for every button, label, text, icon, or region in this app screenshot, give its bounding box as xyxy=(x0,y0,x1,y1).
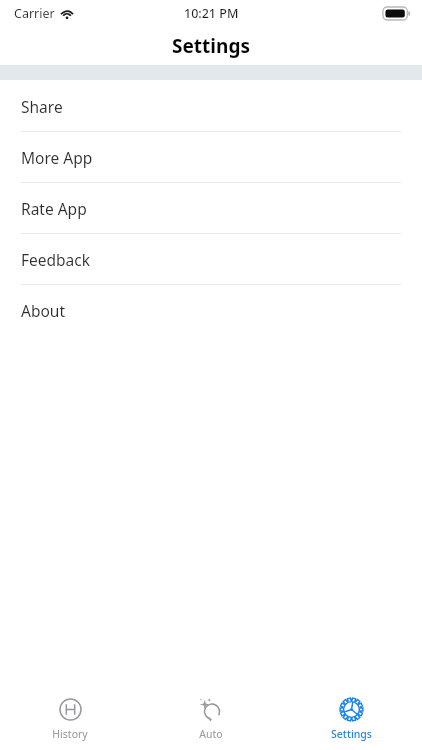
staticText: History xyxy=(52,727,88,741)
button[interactable]: Feedback xyxy=(0,234,422,285)
staticText: More App xyxy=(21,147,93,168)
staticText: Rate App xyxy=(21,198,87,219)
staticText: Share xyxy=(21,96,63,117)
button[interactable]: History xyxy=(0,688,140,750)
staticText: Auto xyxy=(199,727,223,741)
button[interactable]: More App xyxy=(0,132,422,183)
button[interactable]: Rate App xyxy=(0,183,422,234)
staticText: 10:21 PM xyxy=(184,5,239,22)
staticText: Feedback xyxy=(21,249,91,270)
button[interactable]: Settings xyxy=(281,688,422,750)
staticText: Settings xyxy=(172,33,250,59)
staticText: About xyxy=(21,300,65,321)
button[interactable]: About xyxy=(0,285,422,336)
staticText: Carrier xyxy=(14,5,55,22)
button[interactable]: Auto xyxy=(140,688,281,750)
staticText: Settings xyxy=(331,727,372,741)
button[interactable]: Share xyxy=(0,81,422,132)
